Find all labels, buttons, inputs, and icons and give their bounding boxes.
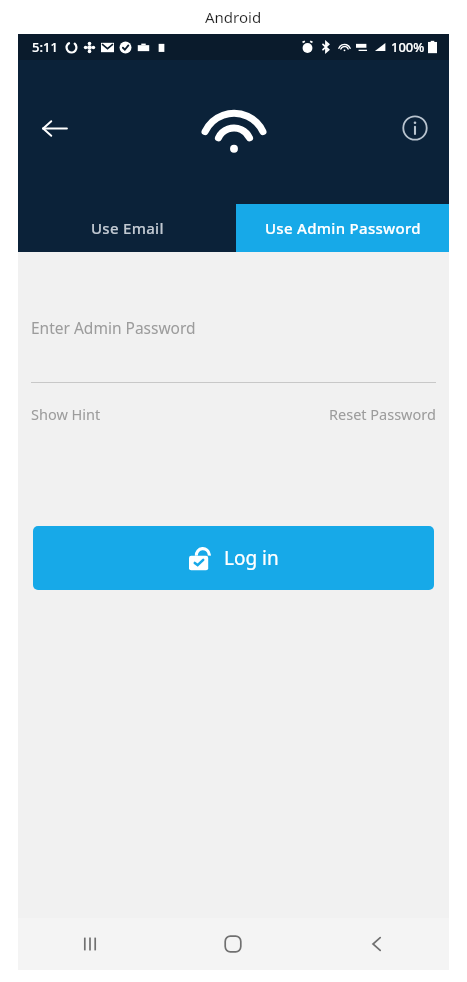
button[interactable]: Recent apps (18, 918, 161, 970)
button[interactable]: Back (305, 918, 449, 970)
button[interactable]: Use Admin Password (236, 204, 449, 252)
staticText: 100% (391, 38, 425, 56)
button[interactable]: Back (30, 104, 78, 152)
staticText: Use Admin Password (265, 218, 421, 238)
staticText: Android (205, 7, 262, 27)
button[interactable]: Log in (33, 526, 434, 590)
staticText: Show Hint (31, 404, 101, 424)
staticText: Enter Admin Password (31, 317, 196, 338)
button[interactable]: Reset Password (329, 400, 436, 428)
button[interactable]: Enter Admin Password (18, 302, 449, 352)
button[interactable]: Info (391, 104, 439, 152)
staticText: Log in (224, 545, 279, 571)
staticText: Use Email (91, 218, 164, 238)
button[interactable]: Show Hint (31, 400, 101, 428)
button[interactable]: Use Email (18, 204, 236, 252)
staticText: 5:11 (32, 38, 58, 56)
staticText: Reset Password (329, 404, 436, 424)
button[interactable]: Home (161, 918, 305, 970)
